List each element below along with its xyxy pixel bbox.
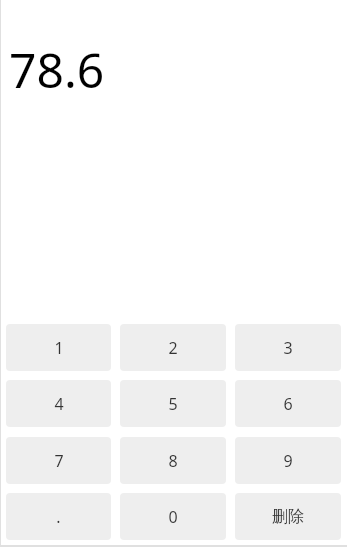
staticText: 78.6 — [9, 37, 105, 102]
staticText: 7 — [54, 450, 64, 472]
button[interactable]: 6 — [235, 380, 341, 427]
button[interactable]: 8 — [120, 437, 226, 484]
button[interactable]: 7 — [6, 437, 111, 484]
staticText: . — [56, 506, 61, 528]
staticText: 2 — [168, 337, 178, 359]
staticText: 9 — [283, 450, 293, 472]
button[interactable]: 2 — [120, 324, 226, 371]
staticText: 8 — [168, 450, 178, 472]
staticText: 6 — [283, 393, 293, 415]
button[interactable]: 0 — [120, 493, 226, 540]
staticText: 1 — [54, 337, 64, 359]
button[interactable]: 4 — [6, 380, 111, 427]
staticText: 0 — [168, 506, 178, 528]
staticText: 4 — [54, 393, 64, 415]
staticText: 删除 — [272, 507, 304, 527]
button[interactable]: Decimal point — [6, 493, 111, 540]
button[interactable]: 5 — [120, 380, 226, 427]
button[interactable]: 9 — [235, 437, 341, 484]
staticText: 3 — [283, 337, 293, 359]
button[interactable]: 3 — [235, 324, 341, 371]
button[interactable]: Delete — [235, 493, 341, 540]
staticText: 5 — [168, 393, 178, 415]
button[interactable]: 1 — [6, 324, 111, 371]
button[interactable]: Amount entered: 78.6 — [0, 37, 347, 102]
